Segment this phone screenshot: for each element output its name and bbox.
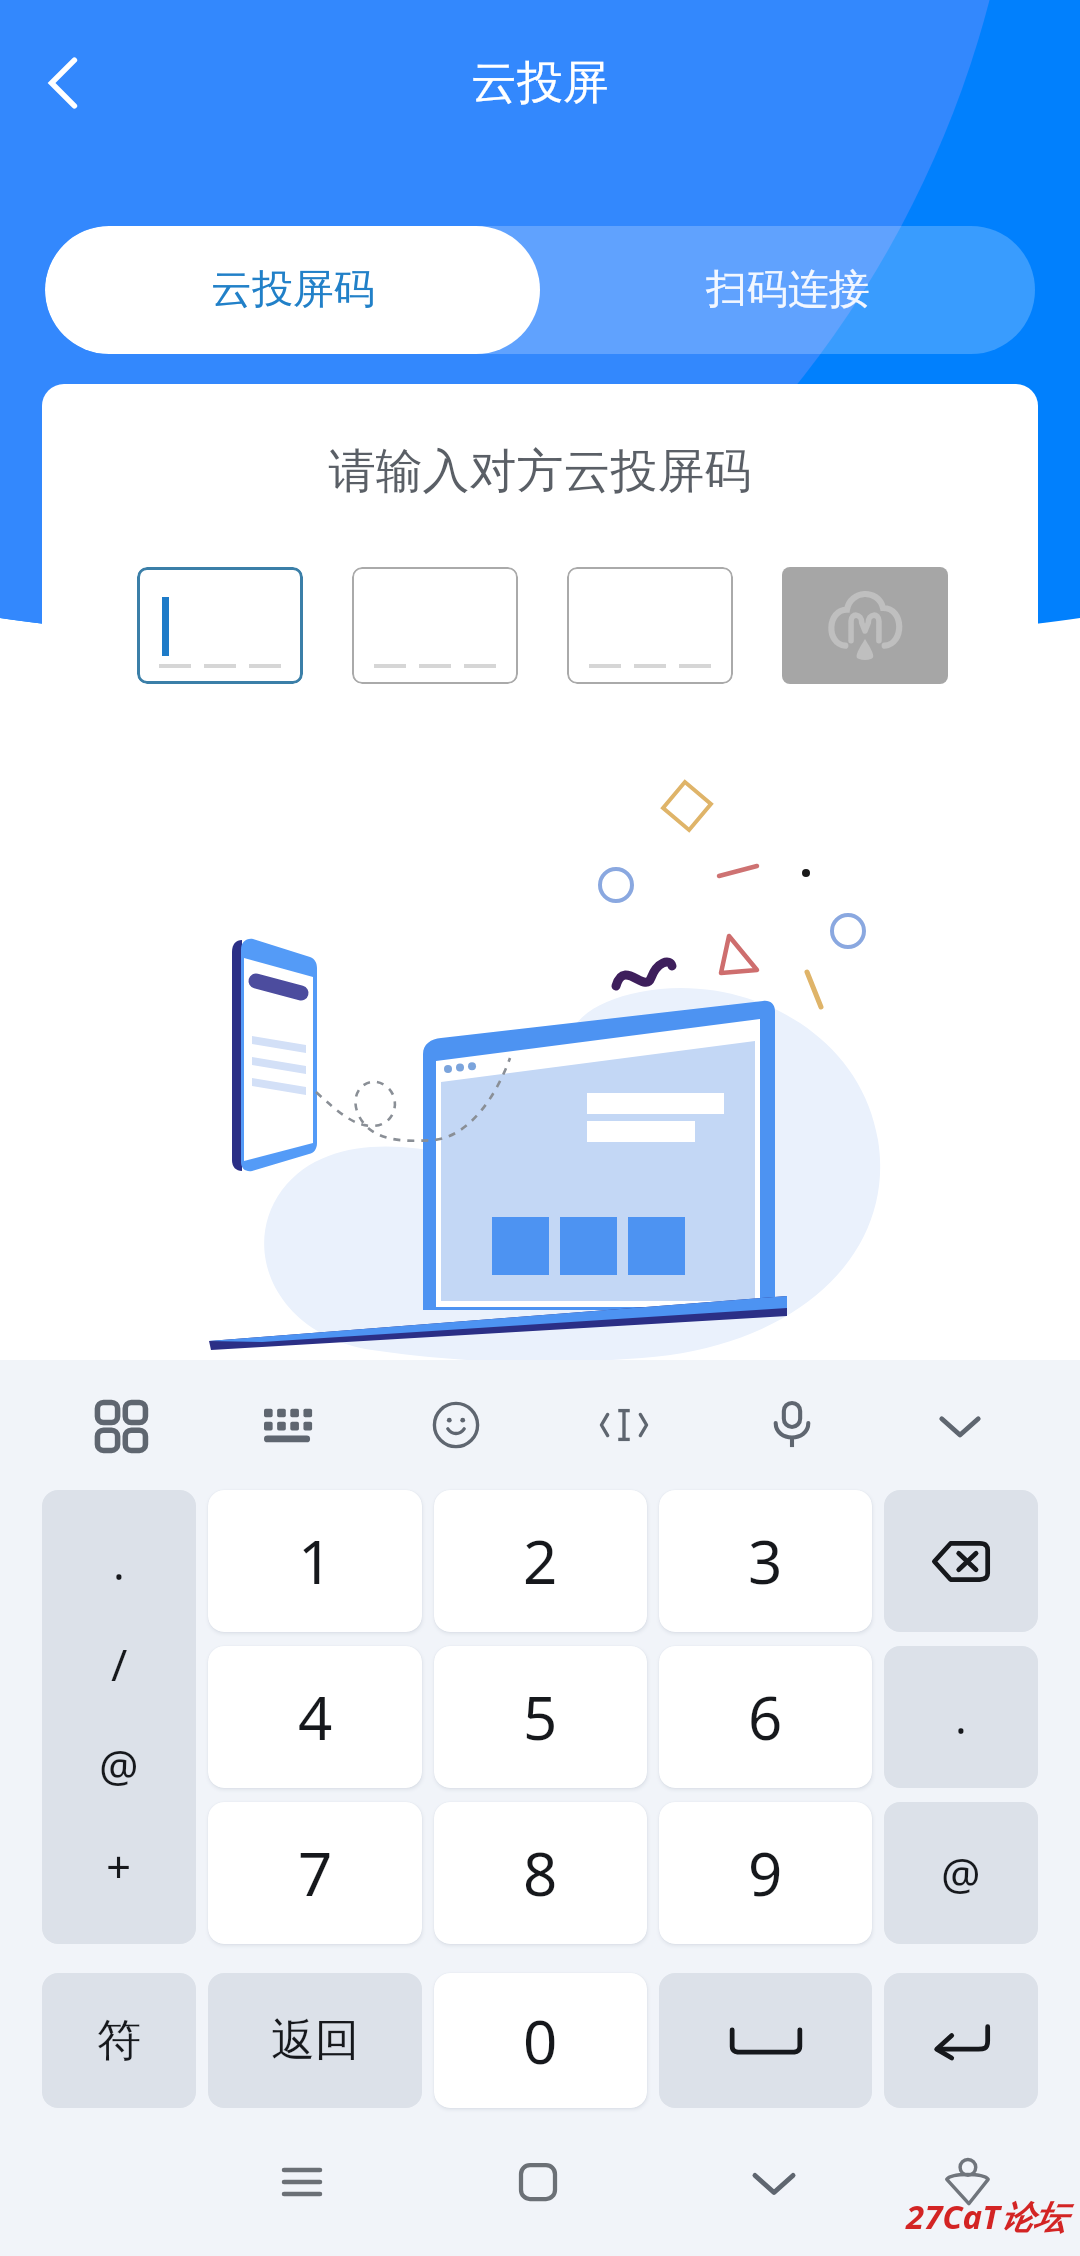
button[interactable]: Voice input (708, 1360, 876, 1490)
button[interactable]: 9 (659, 1802, 872, 1944)
button[interactable]: 6 (659, 1646, 872, 1788)
button[interactable]: 5 (434, 1646, 647, 1788)
staticText: / (111, 1634, 128, 1694)
button[interactable] (567, 567, 733, 684)
staticText: + (106, 1836, 132, 1896)
button[interactable]: Keyboard layout (204, 1360, 372, 1490)
staticText: 6 (748, 1676, 783, 1758)
staticText: 0 (523, 2000, 558, 2082)
button[interactable]: Space (659, 1973, 872, 2108)
button[interactable] (352, 567, 518, 684)
staticText: 7 (298, 1832, 333, 1914)
button[interactable]: Period (884, 1646, 1038, 1788)
staticText: 8 (523, 1832, 558, 1914)
button[interactable]: 1 (208, 1490, 422, 1632)
button[interactable]: Enter (884, 1973, 1038, 2108)
staticText: @ (941, 1843, 981, 1903)
button[interactable]: Home (483, 2127, 593, 2237)
staticText: 符 (97, 2013, 141, 2068)
staticText: . (955, 1687, 967, 1747)
button[interactable]: 符 (42, 1973, 196, 2108)
button[interactable]: Backspace (884, 1490, 1038, 1632)
button[interactable]: 返回 (208, 1973, 422, 2108)
button[interactable]: Hide keyboard (876, 1360, 1044, 1490)
button[interactable]: 7 (208, 1802, 422, 1944)
staticText: 1 (298, 1520, 333, 1602)
button[interactable]: Apps (36, 1360, 204, 1490)
button[interactable]: Move cursor (540, 1360, 708, 1490)
button[interactable]: 3 (659, 1490, 872, 1632)
staticText: 请输入对方云投屏码 (42, 442, 1038, 501)
button[interactable]: Recent apps (247, 2127, 357, 2237)
button[interactable]: At sign (884, 1802, 1038, 1944)
staticText: @ (99, 1735, 139, 1795)
staticText: 27CaT论坛 (906, 2194, 1066, 2239)
button[interactable]: 2 (434, 1490, 647, 1632)
button[interactable]: 8 (434, 1802, 647, 1944)
button[interactable]: Hide keyboard (719, 2127, 829, 2237)
staticText: 2 (523, 1520, 558, 1602)
staticText: 云投屏 (471, 54, 609, 112)
button[interactable]: . (42, 1490, 196, 1944)
staticText: 9 (748, 1832, 783, 1914)
staticText: 3 (748, 1520, 783, 1602)
button[interactable]: 0 (434, 1973, 647, 2108)
button[interactable]: Cloud screen logo (782, 567, 948, 684)
button[interactable]: Back (18, 37, 110, 129)
button[interactable]: 4 (208, 1646, 422, 1788)
staticText: 扫码连接 (706, 264, 870, 316)
staticText: 5 (523, 1676, 558, 1758)
button[interactable] (137, 567, 303, 684)
staticText: 返回 (271, 2013, 359, 2068)
staticText: 云投屏码 (211, 264, 375, 316)
button[interactable]: 扫码连接 (540, 226, 1035, 354)
staticText: . (113, 1533, 125, 1593)
staticText: 4 (298, 1676, 333, 1758)
button[interactable]: 云投屏码 (45, 226, 540, 354)
button[interactable]: Emoji (372, 1360, 540, 1490)
